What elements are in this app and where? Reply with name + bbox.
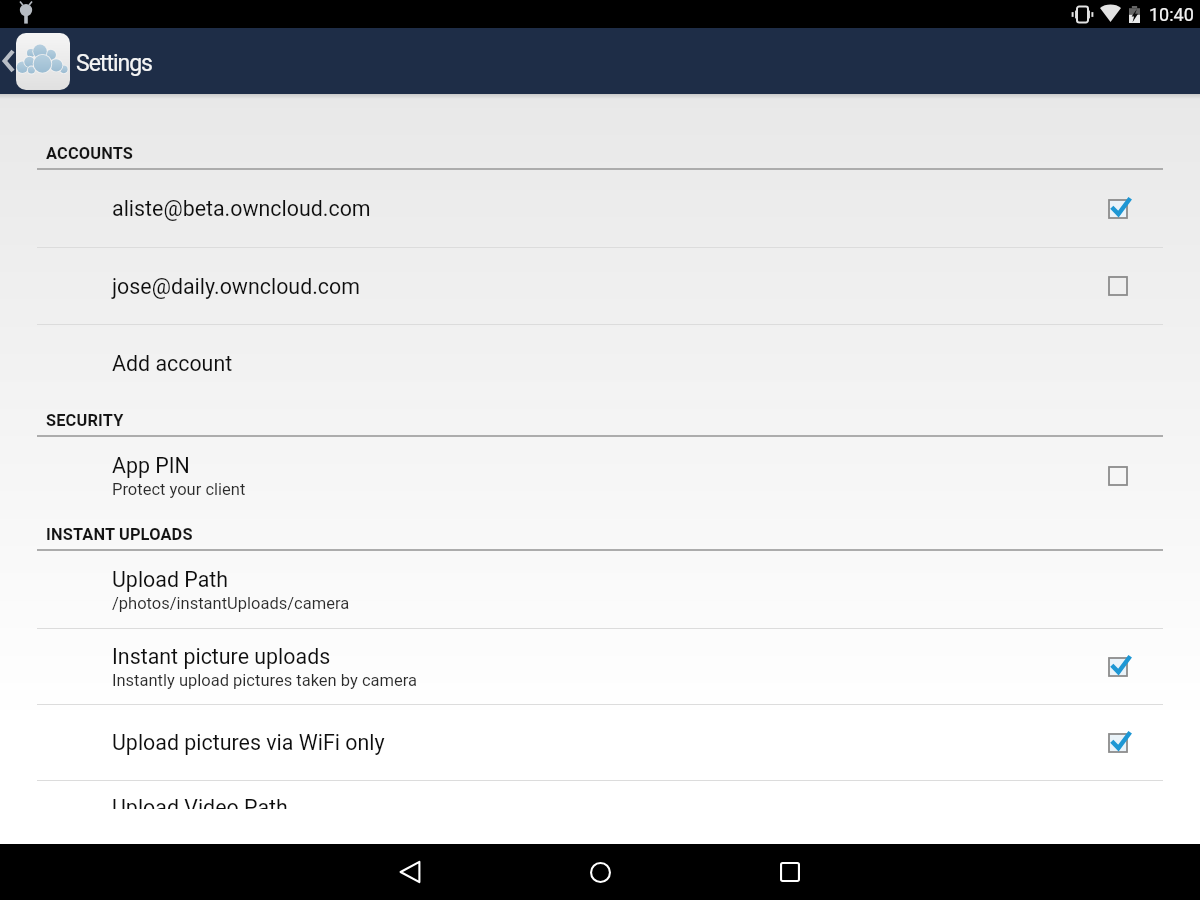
staticText: jose@daily.owncloud.com xyxy=(112,274,360,299)
button[interactable]: Add account xyxy=(0,325,1200,401)
button[interactable]: Navigate up xyxy=(0,28,70,94)
button[interactable]: Recent apps xyxy=(740,844,840,900)
button[interactable]: jose@daily.owncloud.com xyxy=(0,248,1200,324)
button[interactable]: Upload pictures via WiFi only xyxy=(0,705,1200,780)
staticText: Upload Path xyxy=(112,567,229,592)
staticText: Instant picture uploads xyxy=(112,644,331,669)
staticText: /photos/instantUploads/camera xyxy=(112,594,350,613)
staticText: Settings xyxy=(76,50,152,77)
staticText: 10:40 xyxy=(1149,4,1194,25)
button[interactable]: aliste@beta.owncloud.com xyxy=(0,170,1200,247)
staticText: Add account xyxy=(112,351,233,376)
staticText: SECURITY xyxy=(46,411,124,430)
staticText: Instantly upload pictures taken by camer… xyxy=(112,671,417,690)
button[interactable]: App PIN xyxy=(0,437,1200,515)
staticText: aliste@beta.owncloud.com xyxy=(112,196,371,221)
staticText: Upload pictures via WiFi only xyxy=(112,730,385,755)
button[interactable]: Instant picture uploads xyxy=(0,629,1200,704)
staticText: INSTANT UPLOADS xyxy=(46,525,193,544)
staticText: Protect your client xyxy=(112,480,246,499)
staticText: Upload Video Path xyxy=(112,795,288,809)
staticText: ACCOUNTS xyxy=(46,144,134,163)
staticText: App PIN xyxy=(112,453,190,478)
button[interactable]: Back xyxy=(360,844,460,900)
button[interactable]: Upload Video Path xyxy=(0,795,1200,809)
button[interactable]: Upload Path xyxy=(0,551,1200,628)
button[interactable]: Home xyxy=(550,844,650,900)
